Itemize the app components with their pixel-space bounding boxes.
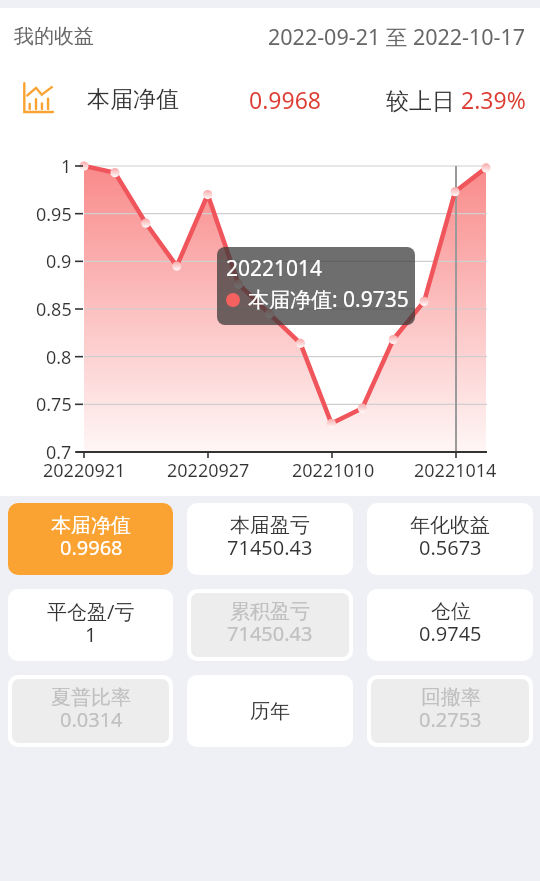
button[interactable]: 本届净值 <box>8 503 173 575</box>
button[interactable]: 夏普比率 <box>12 679 169 743</box>
button[interactable]: 年化收益 <box>367 503 533 575</box>
staticText: 本届净值 <box>51 513 131 538</box>
staticText: 0.5673 <box>419 534 482 561</box>
staticText: 0.9968 <box>60 534 123 561</box>
staticText: 0.9745 <box>419 620 482 647</box>
staticText: 夏普比率 <box>51 685 131 710</box>
staticText: 0.9 <box>46 249 72 274</box>
button[interactable]: 平仓盈/亏 <box>8 589 173 661</box>
staticText: 我的收益 <box>14 24 94 49</box>
staticText: 0.7 <box>46 440 72 465</box>
button[interactable]: 累积盈亏 <box>191 593 349 657</box>
staticText: 71450.43 <box>227 534 313 561</box>
staticText: 0.9968 <box>249 84 321 115</box>
staticText: 71450.43 <box>227 620 313 647</box>
staticText: 年化收益 <box>410 513 490 538</box>
staticText: 20220921 <box>43 458 126 483</box>
staticText: 20221014 <box>414 458 497 483</box>
staticText: 本届盈亏 <box>230 513 310 538</box>
button[interactable]: 仓位 <box>367 589 533 661</box>
staticText: 0.75 <box>36 392 72 417</box>
staticText: 0.95 <box>36 202 72 227</box>
staticText: 0.0314 <box>60 706 123 733</box>
staticText: 本届净值: 0.9735 <box>248 285 409 314</box>
staticText: 0.85 <box>36 297 72 322</box>
staticText: 0.2753 <box>419 706 482 733</box>
staticText: 平仓盈/亏 <box>47 598 135 625</box>
staticText: 20221014 <box>226 254 323 283</box>
staticText: 1 <box>85 621 97 648</box>
staticText: 2022-09-21 至 2022-10-17 <box>268 22 526 51</box>
button[interactable]: 历年 <box>187 675 353 747</box>
staticText: 0.8 <box>46 345 72 370</box>
staticText: 较上日 <box>386 84 461 115</box>
staticText: 20220927 <box>167 458 250 483</box>
staticText: 2.39% <box>461 84 526 115</box>
staticText: 20221010 <box>292 458 375 483</box>
button[interactable]: 本届盈亏 <box>187 503 353 575</box>
button[interactable]: 回撤率 <box>371 679 529 743</box>
staticText: 1 <box>61 154 72 179</box>
staticText: 仓位 <box>431 599 471 624</box>
staticText: 历年 <box>250 699 290 724</box>
staticText: 本届净值 <box>87 85 179 114</box>
staticText: 回撤率 <box>421 685 481 710</box>
staticText: 累积盈亏 <box>230 599 310 624</box>
